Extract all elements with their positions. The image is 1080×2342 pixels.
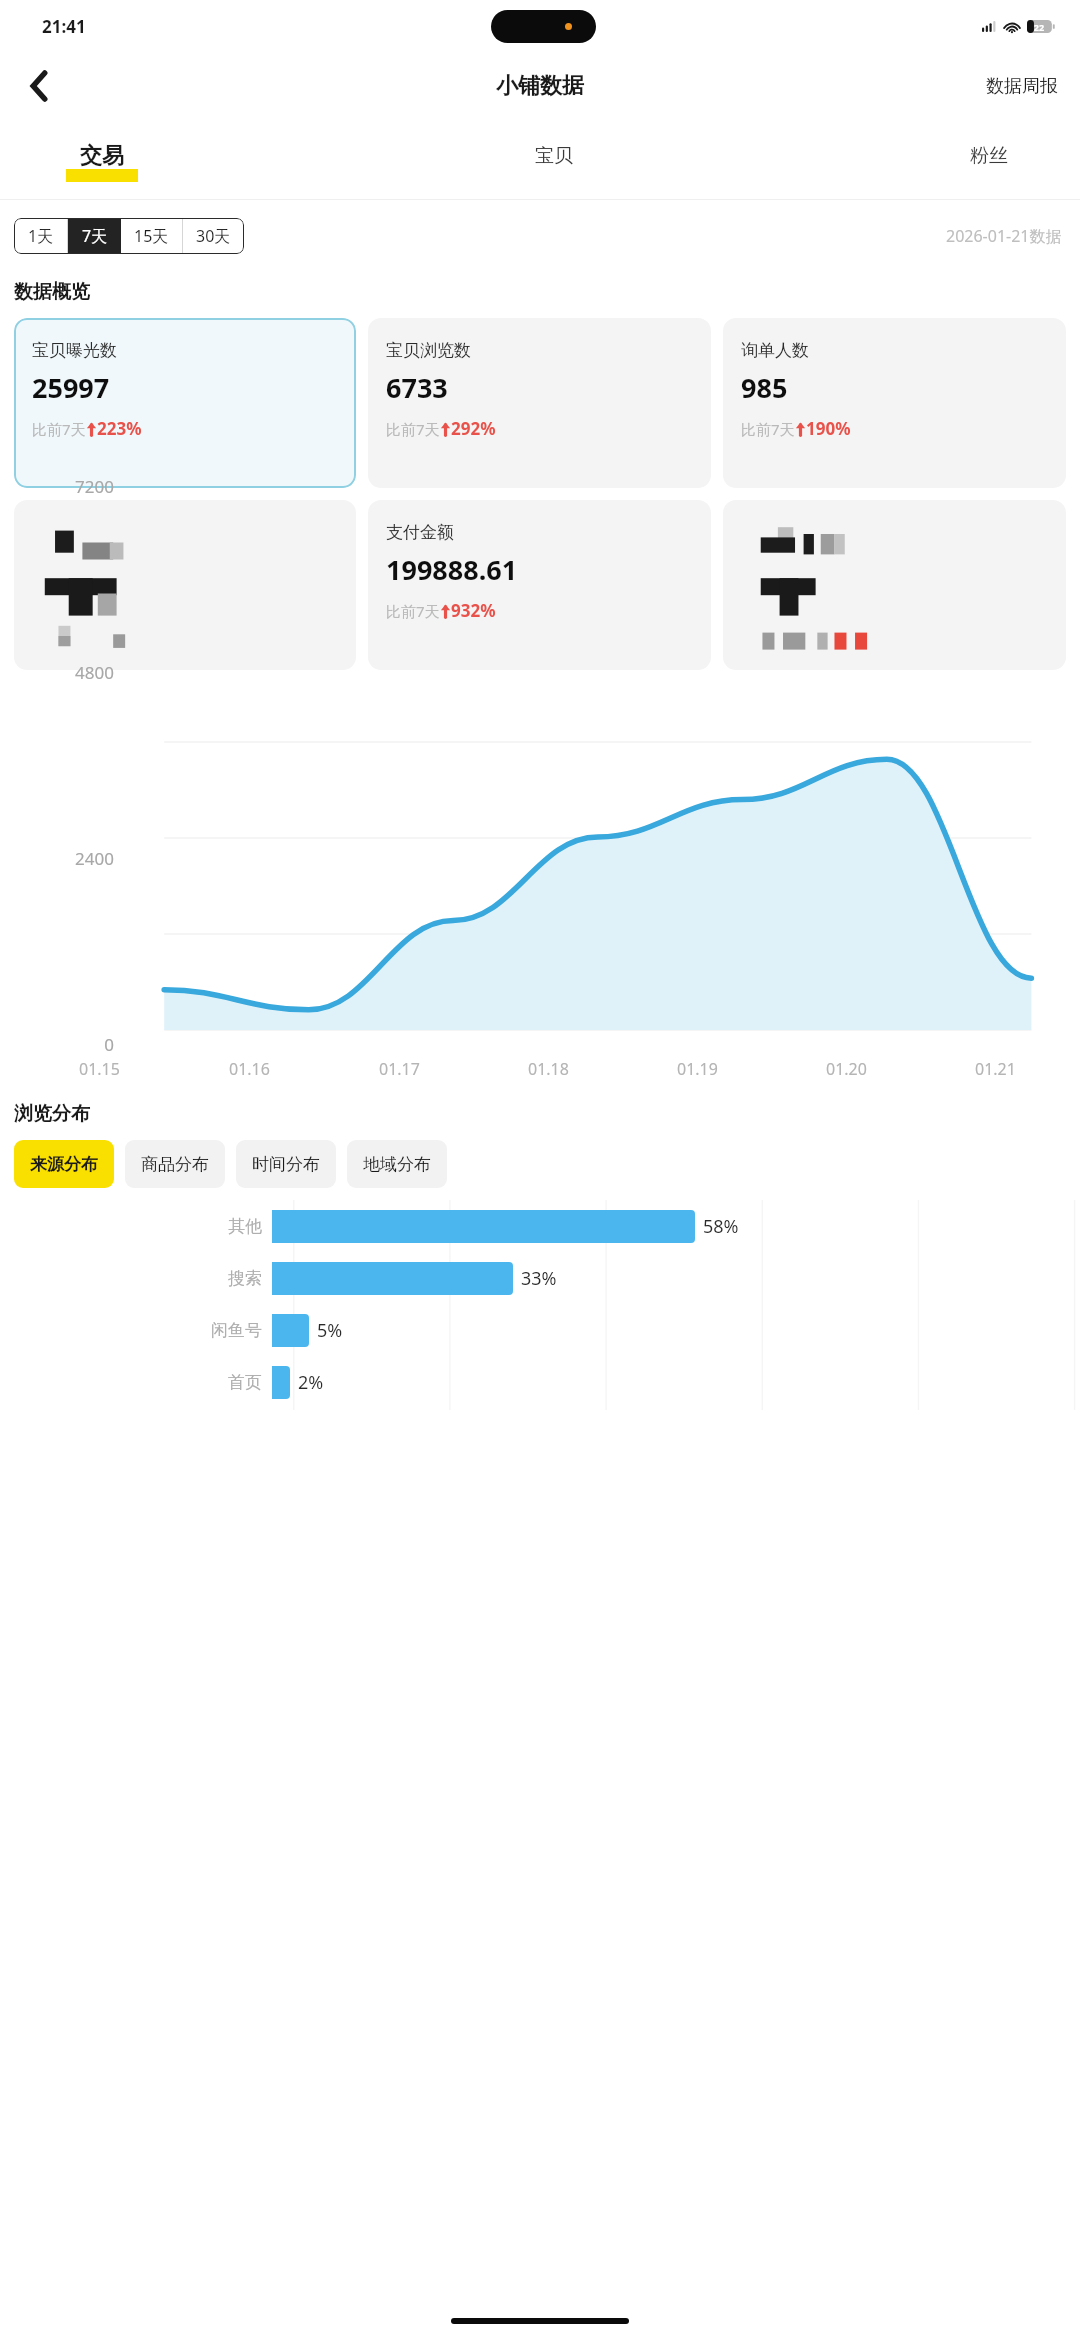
staticText: 33% <box>521 1266 557 1291</box>
button[interactable]: 来源分布 <box>14 1140 114 1188</box>
button[interactable]: 15天 <box>121 218 182 254</box>
button[interactable]: 询单人数 <box>723 318 1066 488</box>
staticText: 985 <box>741 369 788 406</box>
staticText: 宝贝曝光数 <box>32 340 117 361</box>
staticText: 7200 <box>14 475 114 498</box>
staticText: 6733 <box>386 369 448 406</box>
staticText: 其他 <box>228 1216 262 1237</box>
staticText: 地域分布 <box>363 1154 431 1175</box>
button[interactable]: 7天 <box>68 218 121 254</box>
staticText: 支付金额 <box>386 522 454 543</box>
button[interactable]: 粉丝 <box>954 120 1024 198</box>
staticText: 223% <box>97 417 142 440</box>
staticText: 小铺数据 <box>496 72 584 100</box>
staticText: 交易 <box>80 142 124 170</box>
staticText: 292% <box>451 417 496 440</box>
staticText: 比前7天 <box>386 419 440 439</box>
button[interactable]: 商品分布 <box>125 1140 225 1188</box>
staticText: 数据周报 <box>986 75 1058 98</box>
staticText: 2026-01-21数据 <box>946 225 1062 247</box>
button[interactable]: 时间分布 <box>236 1140 336 1188</box>
staticText: 浏览分布 <box>14 1102 90 1126</box>
button[interactable] <box>723 500 1066 670</box>
button[interactable]: 地域分布 <box>347 1140 447 1188</box>
staticText: 7天 <box>82 225 108 247</box>
button[interactable]: 支付金额 <box>368 500 711 670</box>
staticText: 190% <box>806 417 851 440</box>
button[interactable]: 宝贝浏览数 <box>368 318 711 488</box>
staticText: 比前7天 <box>386 601 440 621</box>
button[interactable]: 1天 <box>14 218 67 254</box>
button[interactable] <box>14 500 356 670</box>
staticText: 商品分布 <box>141 1154 209 1175</box>
button[interactable]: 交易 <box>50 120 154 198</box>
staticText: 25997 <box>32 369 110 406</box>
staticText: 4800 <box>14 661 114 684</box>
button[interactable]: 宝贝曝光数 <box>14 318 356 488</box>
staticText: 199888.61 <box>386 551 518 588</box>
staticText: 宝贝 <box>535 144 573 168</box>
staticText: 来源分布 <box>30 1154 98 1175</box>
staticText: 粉丝 <box>970 144 1008 168</box>
staticText: 数据概览 <box>14 280 90 304</box>
staticText: 01.19 <box>677 1058 718 1080</box>
staticText: 询单人数 <box>741 340 809 361</box>
staticText: 时间分布 <box>252 1154 320 1175</box>
staticText: 21:41 <box>42 15 86 38</box>
staticText: 搜索 <box>228 1268 262 1289</box>
staticText: 01.20 <box>826 1058 867 1080</box>
button[interactable]: 数据周报 <box>964 52 1080 120</box>
staticText: 5% <box>317 1318 343 1343</box>
button[interactable]: Back <box>0 52 78 120</box>
staticText: 58% <box>703 1214 739 1239</box>
staticText: 01.17 <box>379 1058 420 1080</box>
staticText: 1天 <box>28 225 54 247</box>
staticText: 比前7天 <box>741 419 795 439</box>
staticText: 15天 <box>134 225 169 247</box>
staticText: 闲鱼号 <box>211 1320 262 1341</box>
staticText: 首页 <box>228 1372 262 1393</box>
button[interactable]: 宝贝 <box>519 120 589 198</box>
staticText: 2400 <box>14 847 114 870</box>
button[interactable]: 30天 <box>183 218 244 254</box>
staticText: 932% <box>451 599 496 622</box>
staticText: 0 <box>14 1033 114 1056</box>
staticText: 01.16 <box>229 1058 270 1080</box>
staticText: 01.18 <box>528 1058 569 1080</box>
staticText: 22 <box>1027 21 1051 33</box>
staticText: 01.21 <box>975 1058 1016 1080</box>
staticText: 30天 <box>196 225 231 247</box>
staticText: 比前7天 <box>32 419 86 439</box>
staticText: 2% <box>298 1370 324 1395</box>
staticText: 01.15 <box>79 1058 120 1080</box>
staticText: 宝贝浏览数 <box>386 340 471 361</box>
